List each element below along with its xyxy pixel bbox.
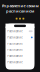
staticText: Расписание bbox=[7, 42, 22, 45]
staticText: расписанием bbox=[6, 8, 34, 14]
staticText: Расписание bbox=[7, 54, 22, 58]
staticText: Расписание bbox=[7, 48, 22, 52]
staticText: Управление своим bbox=[1, 3, 38, 8]
staticText: Расписание bbox=[7, 36, 22, 39]
staticText: Расписание bbox=[7, 60, 22, 64]
staticText: Расписание bbox=[7, 29, 22, 33]
